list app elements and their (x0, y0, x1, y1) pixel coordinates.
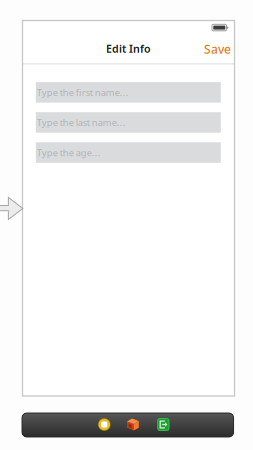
staticText: Edit Info (106, 41, 151, 56)
button[interactable]: Exit (157, 418, 169, 431)
staticText: Type the last name... (37, 116, 126, 129)
staticText: Save (204, 41, 231, 57)
button[interactable]: Save (193, 40, 236, 58)
staticText: Type the age... (37, 146, 101, 159)
textField[interactable]: Type the first name... (36, 82, 221, 103)
textField[interactable]: Type the age... (36, 142, 221, 163)
staticText: Type the first name... (37, 86, 129, 99)
textField[interactable]: Type the last name... (36, 112, 221, 133)
button[interactable]: View Controller (98, 418, 111, 431)
button[interactable]: First Responder (127, 418, 139, 430)
